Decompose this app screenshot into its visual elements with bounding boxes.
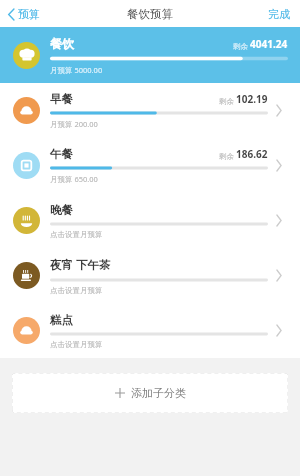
button[interactable]: 添加子分类 xyxy=(12,373,288,413)
staticText: 餐饮预算 xyxy=(127,7,173,21)
other: 打开 午餐 xyxy=(268,138,290,193)
staticText: 186.62 xyxy=(236,147,268,161)
staticText: 剩余 xyxy=(219,151,236,161)
button[interactable]: 午餐 xyxy=(0,138,300,193)
staticText: 剩余 xyxy=(219,96,236,106)
button[interactable]: 餐饮 xyxy=(0,27,300,83)
button[interactable]: 完成 xyxy=(258,3,300,25)
button[interactable]: 晚餐 xyxy=(0,193,300,248)
other: 打开 晚餐 xyxy=(268,193,290,248)
staticText: 午餐 xyxy=(50,147,219,161)
staticText: 完成 xyxy=(268,7,290,21)
staticText: 月预算 200.00 xyxy=(50,119,98,129)
staticText: 4041.24 xyxy=(250,37,288,51)
button[interactable]: 糕点 xyxy=(0,303,300,358)
staticText: 早餐 xyxy=(50,92,219,106)
staticText: 糕点 xyxy=(50,313,268,327)
button[interactable]: 预算 xyxy=(0,3,48,25)
staticText: 102.19 xyxy=(236,92,268,106)
staticText: 预算 xyxy=(18,7,40,21)
staticText: 餐饮 xyxy=(50,36,233,51)
staticText: 晚餐 xyxy=(50,203,268,217)
staticText: 点击设置月预算 xyxy=(50,340,103,349)
other: 打开 夜宵 下午茶 xyxy=(268,248,290,303)
other: 打开 早餐 xyxy=(268,83,290,138)
staticText: 点击设置月预算 xyxy=(50,286,103,295)
staticText: 剩余 xyxy=(233,41,250,51)
staticText: 添加子分类 xyxy=(131,386,186,400)
staticText: 夜宵 下午茶 xyxy=(50,257,268,273)
staticText: 月预算 650.00 xyxy=(50,174,98,184)
button[interactable]: 夜宵 下午茶 xyxy=(0,248,300,303)
button[interactable]: 早餐 xyxy=(0,83,300,138)
staticText: 月预算 5000.00 xyxy=(50,65,103,75)
staticText: 点击设置月预算 xyxy=(50,230,103,239)
other: 打开 糕点 xyxy=(268,303,290,358)
